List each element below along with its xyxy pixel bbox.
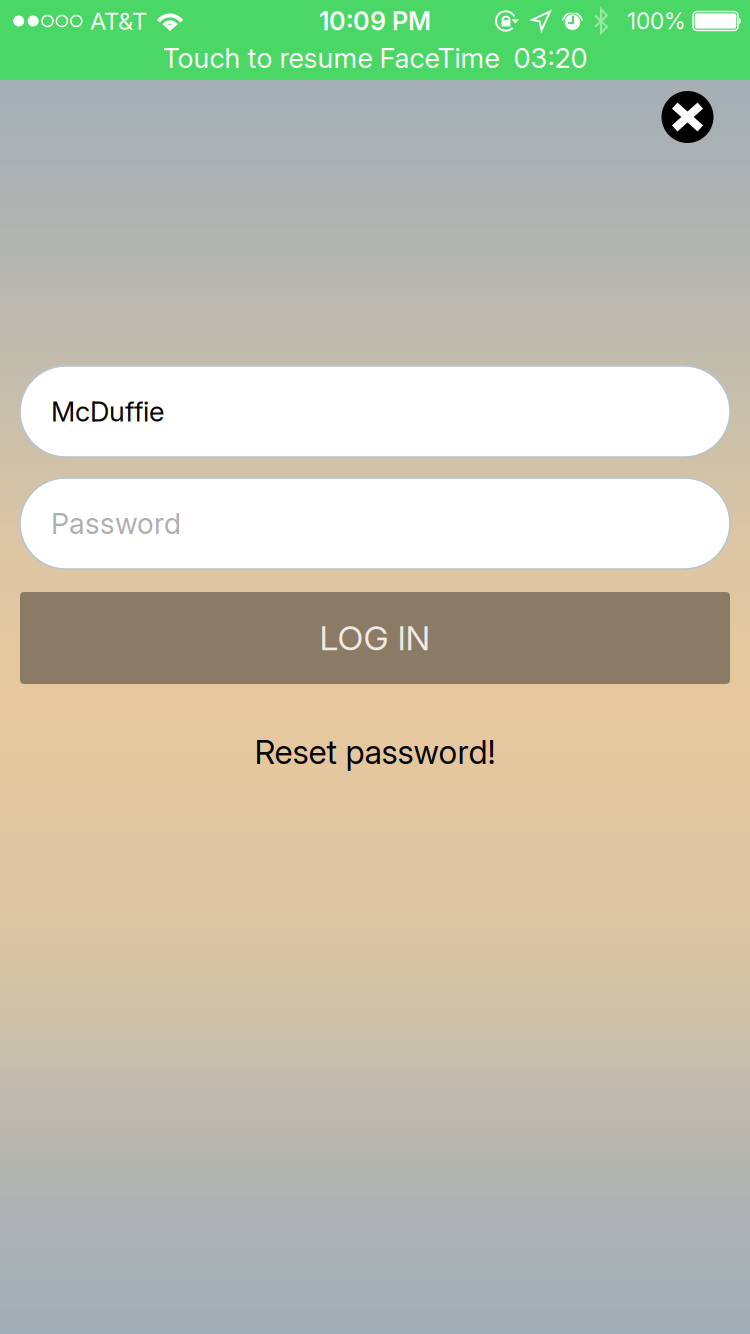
button[interactable]: McDuffie [20,366,730,457]
staticText: LOG IN [319,617,430,658]
staticText: McDuffie [51,395,164,428]
staticText: 10:09 PM [319,6,431,36]
button[interactable]: Close [661,91,713,143]
staticText: Touch to resume FaceTime 03:20 [162,41,587,75]
button[interactable]: Reset password! [20,725,730,779]
staticText: 100% [627,7,686,35]
staticText: AT&T [90,6,147,35]
staticText: Password [51,506,181,541]
staticText: Reset password! [254,732,495,772]
button[interactable]: Password [20,478,730,569]
button[interactable]: LOG IN [20,592,730,684]
